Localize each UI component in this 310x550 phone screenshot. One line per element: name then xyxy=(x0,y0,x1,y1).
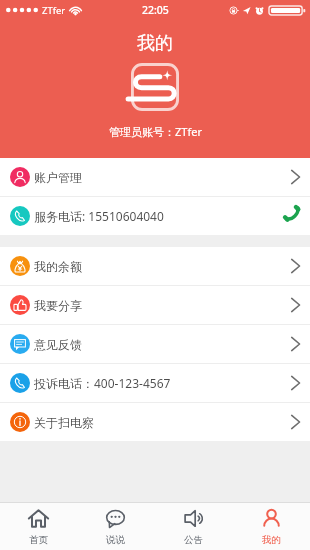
staticText: 意见反馈 xyxy=(34,337,82,352)
button[interactable]: 投诉电话：400-123-4567 xyxy=(0,364,310,402)
button[interactable]: 首页 xyxy=(0,508,77,546)
staticText: 我的 xyxy=(137,32,173,55)
button[interactable]: 服务电话: 15510604040 xyxy=(0,197,310,235)
staticText: 关于扫电察 xyxy=(34,415,94,430)
button[interactable]: 说说 xyxy=(77,508,154,546)
button[interactable]: 账户管理 xyxy=(0,158,310,196)
staticText: 我要分享 xyxy=(34,298,82,313)
staticText: 管理员账号：ZTfer xyxy=(109,124,202,139)
staticText: 我的 xyxy=(262,534,281,546)
staticText: ZTfer xyxy=(42,4,66,17)
button[interactable]: 我的余额 xyxy=(0,247,310,285)
staticText: 我的余额 xyxy=(34,259,82,274)
staticText: 22:05 xyxy=(142,3,169,17)
staticText: 说说 xyxy=(106,534,125,546)
staticText: 首页 xyxy=(29,534,48,546)
button[interactable]: 我的 xyxy=(232,508,310,546)
staticText: 账户管理 xyxy=(34,170,82,185)
button[interactable]: 我要分享 xyxy=(0,286,310,324)
button[interactable]: 关于扫电察 xyxy=(0,403,310,441)
staticText: 服务电话: 15510604040 xyxy=(34,208,164,224)
button[interactable]: 公告 xyxy=(154,508,232,546)
button[interactable]: 意见反馈 xyxy=(0,325,310,363)
staticText: 投诉电话：400-123-4567 xyxy=(34,375,171,391)
staticText: 公告 xyxy=(184,534,203,546)
